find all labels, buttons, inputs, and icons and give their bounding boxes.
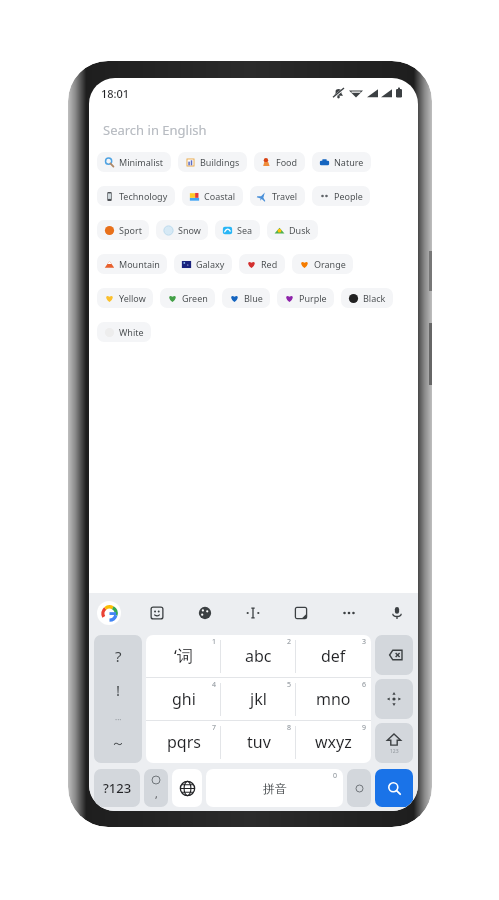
button[interactable]: 8 xyxy=(221,721,296,763)
staticText: Technology xyxy=(119,190,168,202)
button[interactable]: Purple xyxy=(277,288,334,308)
button[interactable]: 拼音 xyxy=(206,769,343,807)
staticText: abc xyxy=(245,645,272,667)
button[interactable]: 7 xyxy=(146,721,221,763)
button[interactable]: 6 xyxy=(296,678,371,720)
staticText: ～ xyxy=(111,735,125,753)
button[interactable]: ?123 xyxy=(94,769,140,807)
staticText: Snow xyxy=(178,224,201,236)
button[interactable]: Google xyxy=(97,601,121,625)
button[interactable]: Green xyxy=(160,288,215,308)
button[interactable]: 5 xyxy=(221,678,296,720)
button[interactable]: Snow xyxy=(156,220,208,240)
staticText: Search in English xyxy=(103,121,207,139)
staticText: Dusk xyxy=(289,224,311,236)
staticText: 8 xyxy=(287,723,292,733)
staticText: Galaxy xyxy=(196,258,225,270)
button[interactable]: Clipboard xyxy=(240,600,266,626)
button[interactable]: Sport xyxy=(97,220,149,240)
staticText: Buildings xyxy=(200,156,240,168)
staticText: White xyxy=(119,326,144,338)
staticText: pqrs xyxy=(167,731,201,753)
staticText: 9 xyxy=(362,723,367,733)
staticText: def xyxy=(321,645,346,667)
staticText: ghi xyxy=(172,688,196,710)
button[interactable]: Minimalist xyxy=(97,152,171,172)
button[interactable]: Mountain xyxy=(97,254,167,274)
button[interactable]: 3 xyxy=(296,635,371,677)
button[interactable]: White xyxy=(97,322,151,342)
button[interactable]: Orange xyxy=(292,254,353,274)
staticText: jkl xyxy=(250,688,267,710)
button[interactable]: People xyxy=(312,186,370,206)
button[interactable]: Technology xyxy=(97,186,175,206)
button[interactable]: 9 xyxy=(296,721,371,763)
button[interactable]: Voice input xyxy=(384,600,410,626)
staticText: mno xyxy=(316,688,351,710)
button[interactable]: Translate xyxy=(288,600,314,626)
button[interactable]: Travel xyxy=(250,186,305,206)
staticText: 3 xyxy=(362,637,367,647)
staticText: Sport xyxy=(119,224,142,236)
staticText: , xyxy=(155,787,158,801)
button[interactable]: More options xyxy=(336,600,362,626)
staticText: ! xyxy=(116,680,121,700)
staticText: ? xyxy=(115,646,122,666)
staticText: Travel xyxy=(272,190,298,202)
staticText: 1 xyxy=(212,637,217,647)
button[interactable]: Black xyxy=(341,288,393,308)
staticText: People xyxy=(334,190,363,202)
staticText: ?123 xyxy=(103,779,132,797)
button[interactable]: Comma and emoji xyxy=(144,769,168,807)
staticText: Purple xyxy=(299,292,327,304)
staticText: Yellow xyxy=(119,292,146,304)
button[interactable]: Galaxy xyxy=(174,254,232,274)
staticText: Nature xyxy=(334,156,364,168)
staticText: 2 xyxy=(287,637,292,647)
staticText: 4 xyxy=(212,680,217,690)
staticText: 拼音 xyxy=(263,781,287,796)
button[interactable]: Coastal xyxy=(182,186,243,206)
staticText: Food xyxy=(276,156,298,168)
staticText: Green xyxy=(182,292,208,304)
button[interactable]: Shift xyxy=(375,723,413,763)
staticText: ʻ词 xyxy=(174,645,193,667)
button[interactable]: Move cursor xyxy=(375,679,413,719)
button[interactable]: Backspace xyxy=(375,635,413,675)
button[interactable]: 4 xyxy=(146,678,221,720)
staticText: Blue xyxy=(244,292,263,304)
staticText: Sea xyxy=(237,224,253,236)
staticText: 5 xyxy=(287,680,292,690)
staticText: Red xyxy=(261,258,278,270)
staticText: 7 xyxy=(212,723,217,733)
staticText: 18:01 xyxy=(101,86,130,101)
button[interactable]: 1 xyxy=(146,635,221,677)
button[interactable]: Red xyxy=(239,254,285,274)
staticText: Minimalist xyxy=(119,156,164,168)
button[interactable]: 2 xyxy=(221,635,296,677)
staticText: Orange xyxy=(314,258,346,270)
staticText: 0 xyxy=(333,771,338,781)
staticText: Black xyxy=(363,292,386,304)
staticText: Coastal xyxy=(204,190,236,202)
button[interactable]: Food xyxy=(254,152,305,172)
button[interactable]: Blue xyxy=(222,288,270,308)
button[interactable]: Search xyxy=(375,769,413,807)
staticText: tuv xyxy=(247,731,271,753)
button[interactable]: Nature xyxy=(312,152,371,172)
button[interactable]: Themes xyxy=(192,600,218,626)
staticText: wxyz xyxy=(315,731,352,753)
staticText: Mountain xyxy=(119,258,160,270)
staticText: 6 xyxy=(362,680,367,690)
button[interactable]: ? xyxy=(94,635,142,763)
button[interactable]: Period xyxy=(347,769,371,807)
button[interactable]: Buildings xyxy=(178,152,247,172)
button[interactable]: Yellow xyxy=(97,288,153,308)
button[interactable]: Switch language xyxy=(172,769,202,807)
button[interactable]: Sea xyxy=(215,220,260,240)
button[interactable]: Stickers xyxy=(144,600,170,626)
staticText: 123 xyxy=(390,748,399,755)
staticText: ··· xyxy=(115,714,122,725)
button[interactable]: Dusk xyxy=(267,220,318,240)
